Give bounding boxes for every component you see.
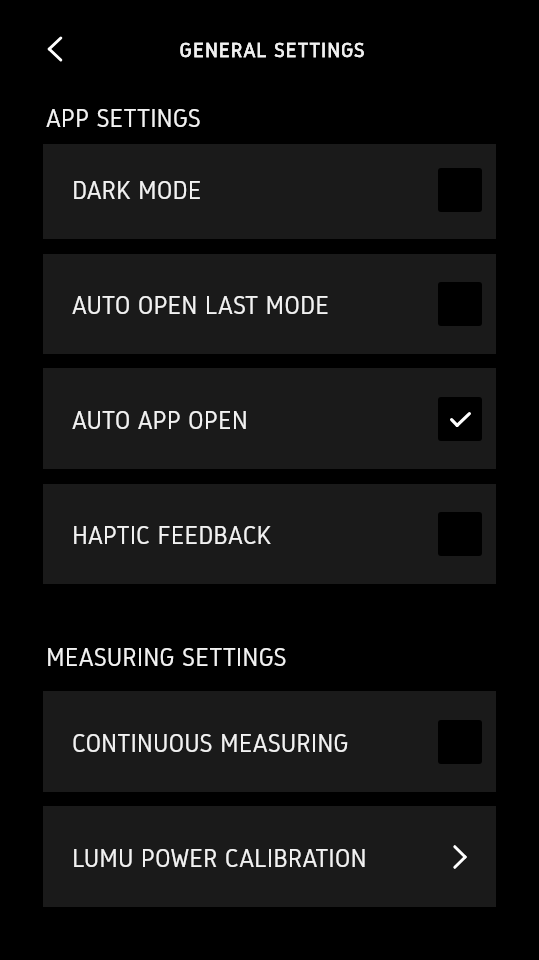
staticText: APP SETTINGS bbox=[46, 102, 201, 134]
button[interactable]: Checked bbox=[438, 397, 482, 441]
staticText: AUTO APP OPEN bbox=[72, 404, 438, 436]
staticText: DARK MODE bbox=[72, 174, 438, 206]
button[interactable]: AUTO APP OPEN bbox=[43, 368, 496, 469]
button[interactable]: CONTINUOUS MEASURING bbox=[43, 691, 496, 792]
button[interactable]: LUMU POWER CALIBRATION bbox=[43, 806, 496, 907]
button[interactable]: HAPTIC FEEDBACK bbox=[43, 484, 496, 584]
staticText: GENERAL SETTINGS bbox=[3, 37, 539, 62]
button[interactable]: DARK MODE bbox=[43, 144, 496, 239]
staticText: HAPTIC FEEDBACK bbox=[72, 519, 438, 551]
staticText: MEASURING SETTINGS bbox=[46, 641, 287, 673]
button[interactable]: AUTO OPEN LAST MODE bbox=[43, 254, 496, 354]
staticText: AUTO OPEN LAST MODE bbox=[72, 289, 438, 321]
staticText: LUMU POWER CALIBRATION bbox=[72, 842, 438, 874]
staticText: GENERAL SETTINGS bbox=[3, 37, 539, 62]
staticText: CONTINUOUS MEASURING bbox=[72, 727, 438, 759]
button[interactable]: Back bbox=[31, 25, 79, 73]
